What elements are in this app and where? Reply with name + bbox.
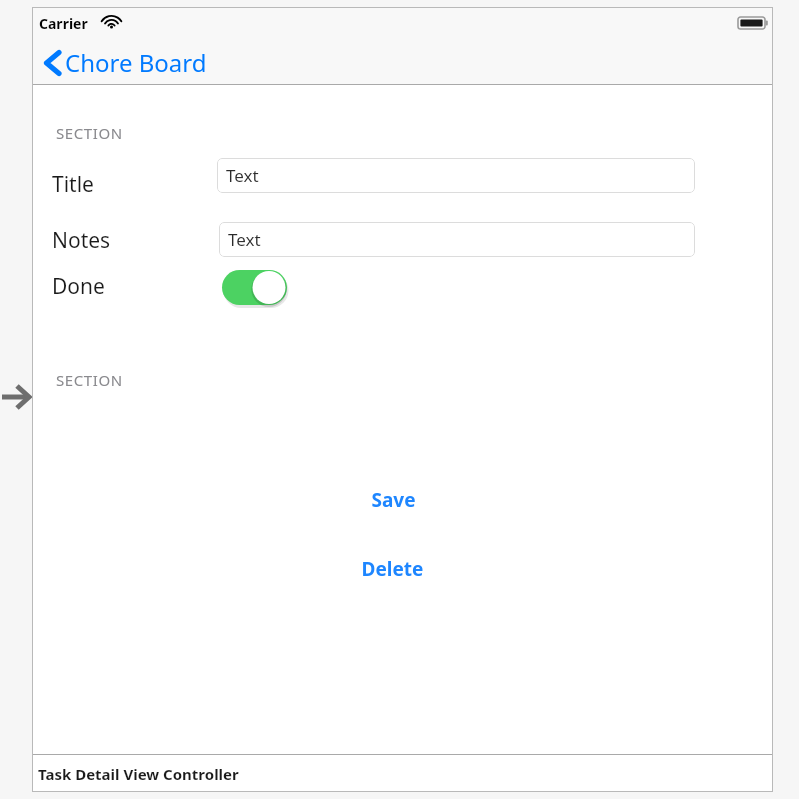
staticText: Text (226, 164, 259, 187)
staticText: Text (228, 228, 261, 251)
staticText: Chore Board (65, 46, 207, 79)
button[interactable]: Back (43, 44, 215, 81)
staticText: Carrier (39, 14, 88, 33)
button[interactable]: Delete (32, 552, 773, 586)
staticText: Notes (52, 226, 111, 255)
staticText: Delete (22, 556, 763, 582)
button[interactable]: Text (217, 158, 695, 193)
staticText: SECTION (56, 370, 123, 390)
staticText: Task Detail View Controller (38, 764, 239, 784)
button[interactable]: Text (219, 222, 695, 257)
other: Back (43, 50, 61, 76)
staticText: SECTION (56, 123, 123, 143)
button[interactable]: Save (32, 483, 773, 517)
staticText: Save (23, 487, 764, 513)
button[interactable]: Done toggle (222, 268, 288, 307)
staticText: Done (52, 272, 105, 301)
staticText: Title (52, 170, 94, 199)
